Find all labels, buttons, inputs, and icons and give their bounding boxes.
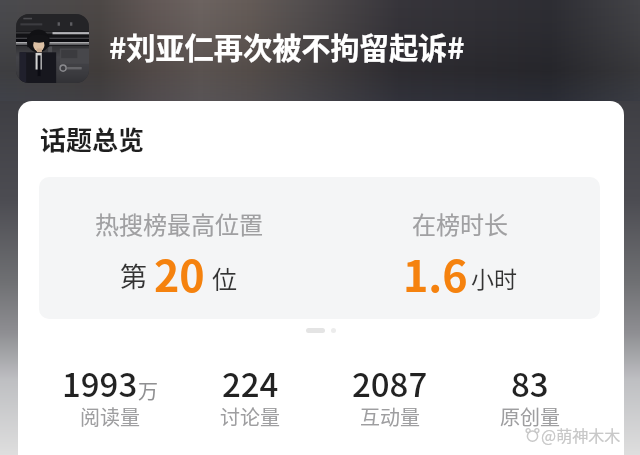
button[interactable]: Page 1 — [306, 328, 325, 333]
staticText: #刘亚仁再次被不拘留起诉# — [109, 25, 465, 67]
button[interactable]: Page 2 — [331, 328, 336, 333]
staticText: 原创量 — [500, 402, 560, 431]
staticText: 阅读量 — [80, 402, 140, 431]
staticText: 224 — [222, 359, 279, 407]
staticText: 话题总览 — [40, 120, 145, 158]
button[interactable]: 83 — [460, 359, 600, 436]
staticText: 20 — [154, 242, 205, 304]
staticText: 互动量 — [360, 402, 420, 431]
button[interactable]: Topic video thumbnail — [16, 14, 89, 83]
staticText: 1993 — [62, 359, 138, 407]
button[interactable]: #刘亚仁再次被不拘留起诉# — [100, 20, 482, 70]
staticText: 83 — [511, 359, 549, 407]
button[interactable]: 1993 — [40, 359, 180, 436]
button[interactable]: 2087 — [320, 359, 460, 436]
staticText: 位 — [212, 260, 238, 296]
staticText: 讨论量 — [220, 402, 280, 431]
staticText: 2087 — [352, 359, 428, 407]
staticText: 在榜时长 — [412, 206, 508, 241]
button[interactable]: @萌神木木 — [525, 423, 621, 446]
staticText: 万 — [138, 376, 158, 405]
button[interactable]: 224 — [180, 359, 320, 436]
staticText: 热搜榜最高位置 — [95, 206, 263, 241]
staticText: @萌神木木 — [541, 423, 621, 446]
staticText: 小时 — [471, 261, 517, 294]
staticText: 第 — [120, 256, 147, 295]
button[interactable]: 热搜榜最高位置 — [39, 177, 600, 319]
staticText: 1.6 — [403, 242, 468, 304]
